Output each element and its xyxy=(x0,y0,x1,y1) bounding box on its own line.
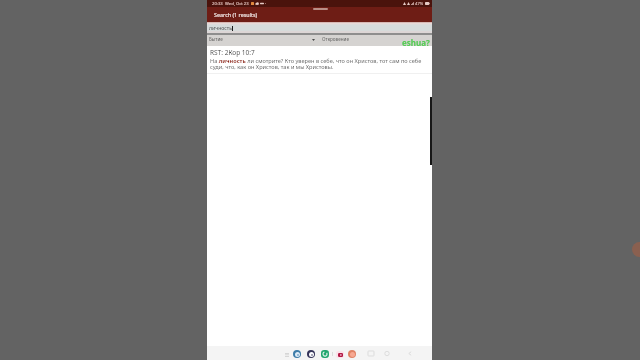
staticText: 20:33 xyxy=(212,1,223,7)
button[interactable]: YouTube xyxy=(336,351,344,358)
button[interactable]: личность xyxy=(207,22,432,35)
button[interactable]: Откровение xyxy=(319,35,432,46)
staticText: 47% xyxy=(415,1,424,7)
button[interactable]: Photos xyxy=(307,350,315,358)
staticText: RST: 2Кор 10:7 xyxy=(210,48,255,57)
button[interactable]: Messages xyxy=(293,350,301,358)
staticText: личность xyxy=(209,25,232,32)
button[interactable]: Phone xyxy=(321,350,329,358)
button[interactable]: Бытие xyxy=(207,35,319,46)
button[interactable]: Home xyxy=(384,351,390,356)
button[interactable]: Back xyxy=(407,351,413,356)
button[interactable]: Floating bubble xyxy=(632,242,640,257)
button[interactable]: All apps xyxy=(285,353,289,357)
staticText: На личность ли смотрите? Кто уверен в се… xyxy=(210,57,424,71)
staticText: Откровение xyxy=(322,36,349,42)
button[interactable]: Browser xyxy=(348,350,356,358)
staticText: eshua? xyxy=(402,37,430,48)
button[interactable]: Recents xyxy=(368,351,374,356)
staticText: Wed, Oct 23 xyxy=(225,1,249,7)
staticText: Бытие xyxy=(209,36,223,42)
button[interactable]: Search (1 results) xyxy=(207,7,432,22)
staticText: Search (1 results) xyxy=(214,11,258,18)
